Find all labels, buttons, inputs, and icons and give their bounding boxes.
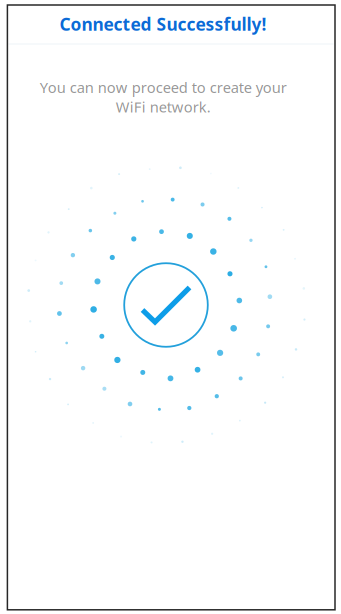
staticText: You can now proceed to create your WiFi … (39, 77, 286, 116)
staticText: Connected Successfully! (59, 12, 266, 35)
